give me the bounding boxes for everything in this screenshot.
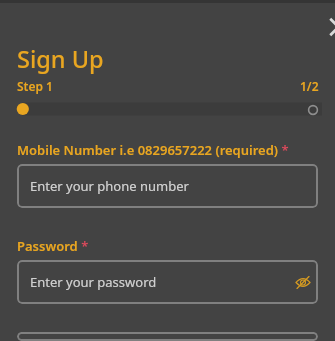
staticText: Password * xyxy=(17,237,89,255)
button[interactable] xyxy=(17,332,318,341)
staticText: 1/2 xyxy=(300,78,319,94)
staticText: Mobile Number i.e 0829657222 (required) … xyxy=(17,141,289,159)
button[interactable]: Enter your password xyxy=(17,260,318,304)
staticText: Step 1 xyxy=(17,78,53,94)
staticText: Sign Up xyxy=(17,43,104,75)
staticText: Enter your password xyxy=(30,273,157,291)
button[interactable]: Show password xyxy=(292,271,314,293)
button[interactable]: Enter your phone number xyxy=(17,164,318,208)
staticText: Enter your phone number xyxy=(30,177,189,195)
button[interactable]: Close xyxy=(315,5,335,50)
